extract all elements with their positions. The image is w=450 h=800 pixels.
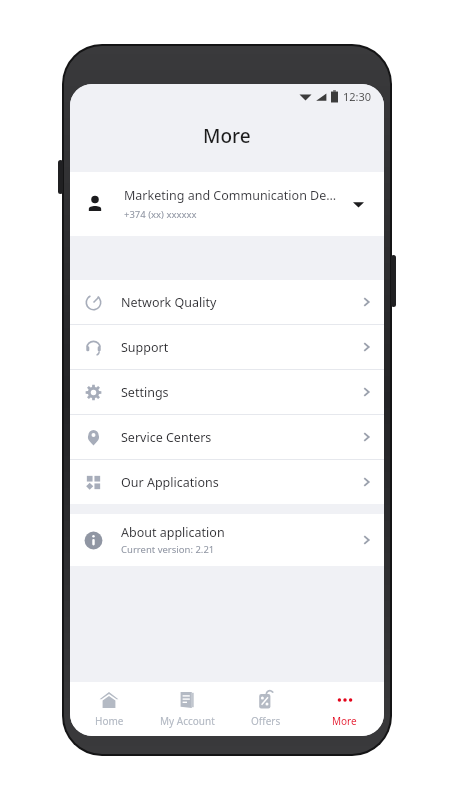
staticText: Support xyxy=(121,339,363,356)
button[interactable]: About application xyxy=(70,514,384,566)
button[interactable]: Home xyxy=(70,682,148,736)
staticText: Marketing and Communication De… xyxy=(124,187,337,204)
staticText: Offers xyxy=(251,714,281,728)
staticText: +374 (xx) xxxxxx xyxy=(124,208,197,221)
staticText: Current version: 2.21 xyxy=(121,543,215,556)
staticText: 12:30 xyxy=(343,89,372,104)
staticText: Settings xyxy=(121,384,363,401)
staticText: Home xyxy=(95,714,124,728)
button[interactable]: Marketing and Communication De… xyxy=(70,172,384,236)
button[interactable]: Network Quality xyxy=(70,280,384,324)
staticText: Our Applications xyxy=(121,474,363,491)
button[interactable]: More xyxy=(305,682,384,736)
staticText: More xyxy=(203,123,251,149)
button[interactable]: Offers xyxy=(226,682,305,736)
button[interactable]: My Account xyxy=(148,682,226,736)
staticText: More xyxy=(332,714,357,728)
button[interactable]: Expand account xyxy=(346,192,370,216)
button[interactable]: Our Applications xyxy=(70,460,384,504)
button[interactable]: Service Centers xyxy=(70,415,384,459)
staticText: Network Quality xyxy=(121,294,363,311)
button[interactable]: Settings xyxy=(70,370,384,414)
staticText: About application xyxy=(121,524,225,541)
staticText: My Account xyxy=(160,714,215,728)
button[interactable]: Support xyxy=(70,325,384,369)
staticText: Service Centers xyxy=(121,429,363,446)
